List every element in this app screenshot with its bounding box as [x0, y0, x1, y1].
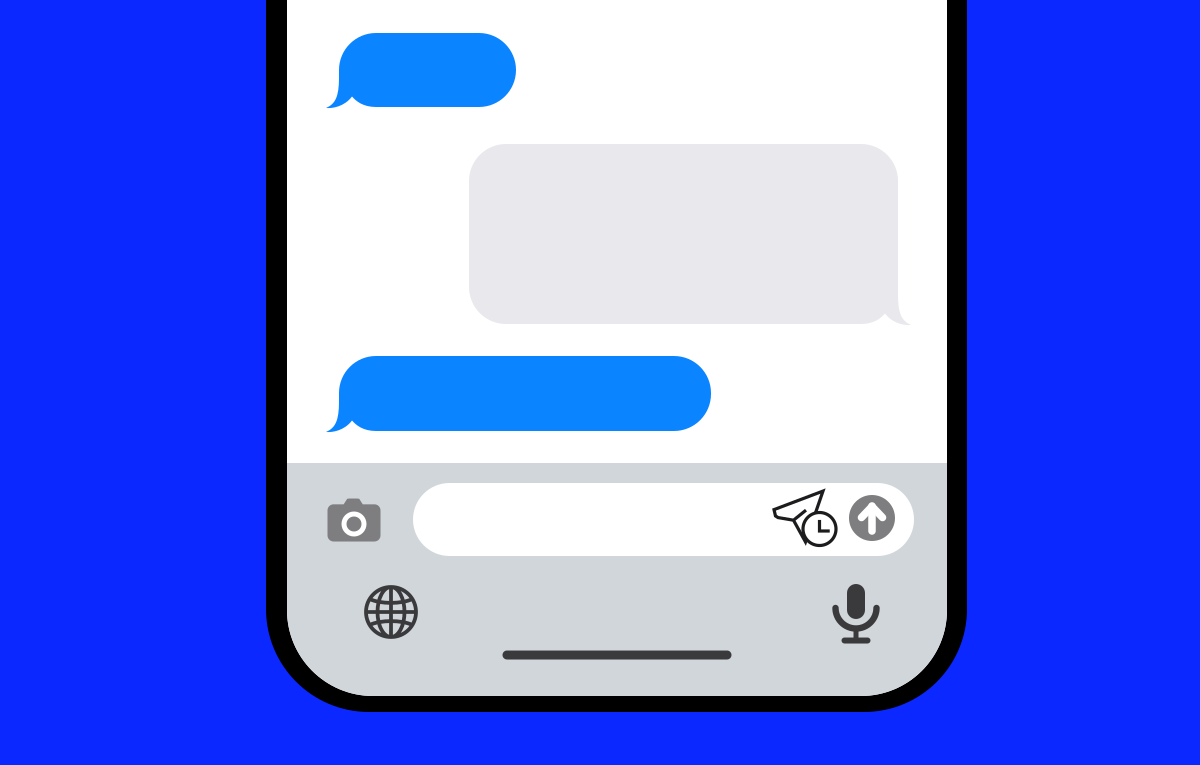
button[interactable]: Switch keyboard: [357, 578, 425, 646]
button[interactable]: Send later: [761, 483, 837, 551]
button[interactable]: Camera: [323, 495, 385, 547]
button[interactable]: Send: [846, 492, 898, 544]
button[interactable]: Dictate: [828, 579, 884, 645]
